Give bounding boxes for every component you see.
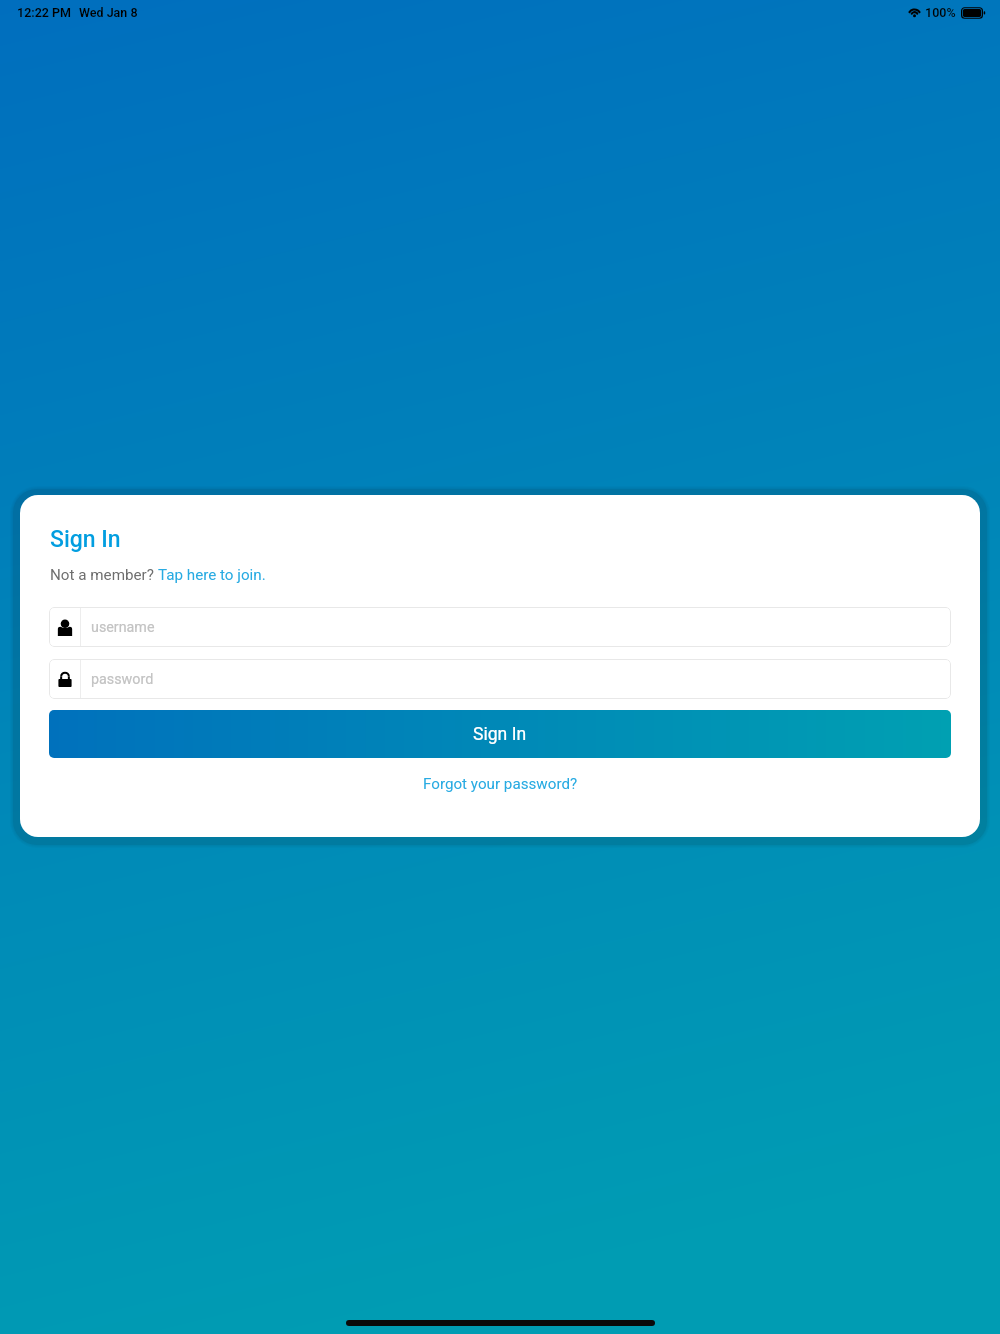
button[interactable]: password bbox=[49, 659, 951, 699]
button[interactable]: Sign In bbox=[49, 710, 951, 758]
staticText: Sign In bbox=[50, 526, 121, 553]
button[interactable]: Tap here to join. bbox=[158, 566, 266, 584]
other: Wi-Fi connected bbox=[907, 7, 922, 18]
button[interactable]: username bbox=[49, 607, 951, 647]
staticText: Sign In bbox=[473, 724, 527, 745]
staticText: username bbox=[91, 619, 155, 636]
other: Battery full bbox=[961, 7, 985, 19]
staticText: 100% bbox=[925, 5, 956, 20]
button[interactable]: Forgot your password? bbox=[423, 775, 578, 793]
staticText: password bbox=[91, 671, 154, 688]
staticText: 12:22 PM bbox=[17, 5, 72, 20]
staticText: Not a member? bbox=[50, 566, 158, 584]
staticText: Wed Jan 8 bbox=[79, 5, 138, 20]
other: Home indicator bbox=[346, 1320, 655, 1326]
